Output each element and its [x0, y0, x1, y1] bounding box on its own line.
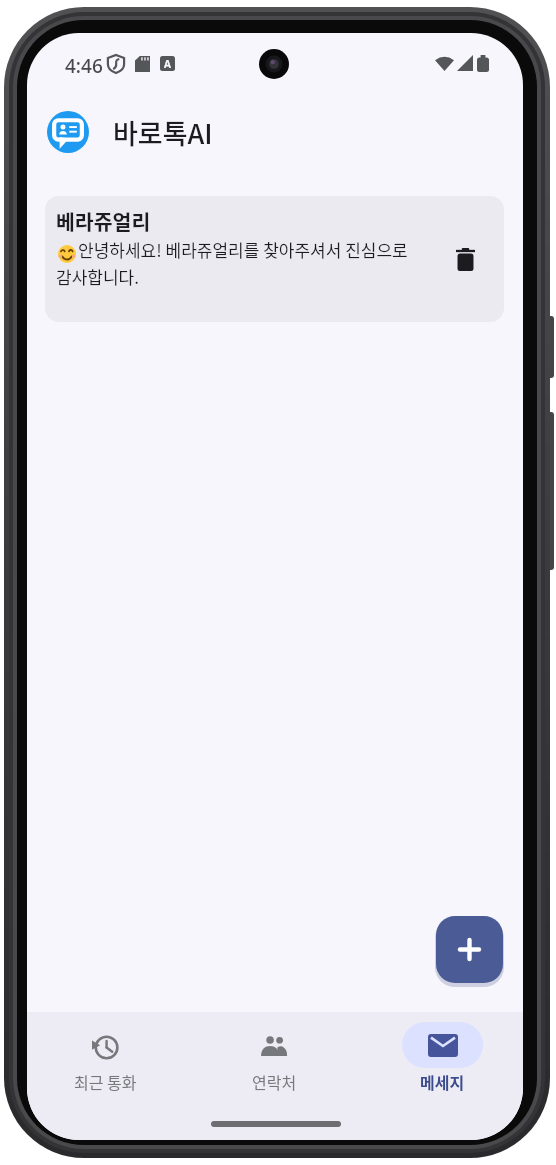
staticText: 연락처 [252, 1070, 297, 1093]
button[interactable]: 연락처 [224, 1021, 324, 1099]
staticText: 바로톡AI [113, 113, 213, 152]
button[interactable] [456, 248, 475, 271]
button[interactable]: 메세지 [392, 1018, 492, 1099]
staticText: 4:46 [65, 53, 103, 79]
button[interactable] [436, 916, 503, 983]
staticText: 베라쥬얼리 [56, 206, 151, 236]
staticText: A [164, 57, 171, 71]
button[interactable]: 최근 통화 [55, 1021, 155, 1099]
staticText: 메세지 [420, 1070, 465, 1093]
staticText: 최근 통화 [74, 1070, 137, 1093]
staticText: 안녕하세요! 베라쥬얼리를 찾아주셔서 진심으로 [78, 237, 408, 262]
button[interactable]: 베라쥬얼리 [45, 196, 504, 322]
staticText: 감사합니다. [56, 264, 139, 289]
